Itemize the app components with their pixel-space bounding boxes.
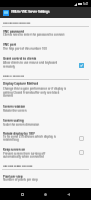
staticText: VNC password [3,30,24,34]
staticText: DISPLAY SETTINGS [3,74,24,77]
staticText: VNC password [3,30,24,34]
button[interactable]: Rotate display by 180 degrees [79,136,84,141]
staticText: Change this to gain performance or if di… [3,87,67,91]
staticText: Number of pixels per step [3,178,38,181]
staticText: Number of pixels per step [3,178,38,182]
staticText: VNC port [3,43,17,47]
staticText: camera [3,94,13,98]
staticText: rotated bug [3,138,19,141]
staticText: Scale the screen dimension [3,123,40,127]
staticText: 5:41 [83,2,89,6]
button[interactable]: Home [41,190,50,199]
staticText: Clients need to enter the password to co… [3,33,65,37]
staticText: CONNECTION SETTINGS [3,21,31,23]
staticText: VNC port [3,43,17,47]
staticText: Screen scaling [3,119,24,123]
staticText: remotely [3,65,15,69]
staticText: Allow clients to use mouse and keyboard [3,61,58,65]
staticText: Rotate display by 180° [3,132,36,136]
staticText: Display Capture Method [3,82,39,86]
staticText: Pixel per step [3,175,23,178]
staticText: Pixel per step [3,175,23,179]
staticText: Display Capture Method [3,82,39,85]
staticText: Rotate the screen [3,109,27,112]
staticText: Clients need to enter the password to co… [3,33,65,36]
staticText: VNC password [3,30,24,33]
staticText: camera [3,94,13,98]
staticText: DISPLAY SETTINGS [3,74,24,77]
staticText: Keep screen on [3,148,26,152]
staticText: VNC port [3,43,17,46]
staticText: To fix some Z10 devices which display is [3,135,56,139]
button[interactable]: Display Capture Method [0,80,91,100]
staticText: Allow clients to use mouse and keyboard [3,61,58,64]
staticText: getting Closed Framebuffer only see blac… [3,91,60,94]
staticText: Clients need to enter the password to co… [3,33,65,37]
staticText: GESTURE SPEED CONTROL [3,164,33,166]
staticText: Prevent screen from turning off [3,152,46,155]
staticText: automatically when connected [3,155,44,158]
button[interactable]: Rotate display by 180 degrees [0,130,91,145]
button[interactable]: VNC password [0,28,91,41]
staticText: Display Capture Method [3,82,39,86]
staticText: The http port of this number 100 [3,47,47,51]
staticText: Grant control to clients [3,57,37,60]
staticText: Screen scaling [3,119,24,123]
staticText: getting Closed Framebuffer only see blac… [3,91,60,95]
staticText: Allow clients to use mouse and keyboard [3,61,58,65]
staticText: Prevent screen from turning off [3,152,46,156]
staticText: Rotate the screen [3,109,27,113]
staticText: Rotate display by 180° [3,132,36,136]
staticText: Keep screen on [3,148,26,151]
button[interactable]: Keep screen on [79,150,84,155]
staticText: remotely [3,65,15,69]
staticText: Change this to gain performance or if di… [3,87,67,91]
staticText: automatically when connected [3,155,44,159]
staticText: GESTURE SPEED CONTROL [3,164,33,167]
staticText: CONNECTION SETTINGS [3,21,31,24]
staticText: Grant control to clients [3,57,37,61]
staticText: VMLite VNC Server Settings [11,10,50,13]
staticText: rotated bug [3,138,19,142]
button[interactable]: Grant control to clients [79,63,84,68]
staticText: Grant control to clients [3,57,37,61]
staticText: Pixel per step [3,175,23,179]
staticText: Rotate display by 180° [3,132,36,135]
staticText: VMLite VNC Server Settings [11,10,50,14]
button[interactable]: Screen rotation [0,103,91,116]
staticText: Rotate the screen [3,109,27,113]
staticText: Number of pixels per step [3,178,38,182]
staticText: Change this to gain performance or if di… [3,87,67,90]
staticText: remotely [3,65,15,68]
staticText: The http port of this number 100 [3,47,47,50]
staticText: Screen rotation [3,105,26,109]
staticText: DISPLAY SETTINGS [3,74,24,76]
staticText: rotated bug [3,138,19,142]
staticText: Scale the screen dimension [3,123,40,127]
staticText: Screen rotation [3,105,26,109]
staticText: automatically when connected [3,155,44,159]
button[interactable]: Recents [18,190,27,199]
staticText: VMLite VNC Server Settings [11,10,50,14]
staticText: CONNECTION SETTINGS [3,21,31,24]
staticText: getting Closed Framebuffer only see blac… [3,91,60,95]
staticText: Screen scaling [3,119,24,122]
button[interactable]: Pixel per step [0,173,91,185]
button[interactable]: Back [64,190,73,199]
staticText: Prevent screen from turning off [3,152,46,156]
staticText: To fix some Z10 devices which display is [3,135,56,139]
button[interactable]: Grant control to clients [0,56,91,73]
button[interactable]: Keep screen on [0,146,91,161]
button[interactable]: Screen scaling [0,117,91,130]
button[interactable]: VNC port [0,42,91,55]
button[interactable]: App icon [3,10,9,16]
staticText: Keep screen on [3,148,26,152]
staticText: Scale the screen dimension [3,123,40,126]
staticText: Screen rotation [3,105,26,108]
staticText: GESTURE SPEED CONTROL [3,164,33,167]
staticText: camera [3,94,13,97]
staticText: The http port of this number 100 [3,47,47,51]
staticText: To fix some Z10 devices which display is [3,135,56,138]
